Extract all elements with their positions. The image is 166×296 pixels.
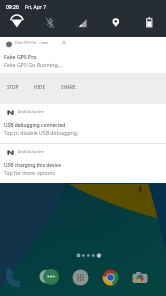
staticText: 09:26 [6,4,19,11]
staticText: Fake GPS Go Running... [4,61,62,68]
button[interactable]: Android System [0,144,166,183]
staticText: Fri, Apr 7 [25,4,47,11]
staticText: Android System [18,109,44,114]
staticText: USB debugging connected [4,122,66,129]
button[interactable]: Fake GPS Pro • now [0,37,166,73]
button[interactable]: STOP [5,81,21,93]
staticText: Fake GPS Pro [4,53,37,60]
staticText: Fake GPS Pro • now [15,40,48,45]
staticText: Tap for more options [4,169,56,176]
button[interactable]: HIDE [32,81,47,93]
staticText: Tap to disable USB debugging. [4,129,79,136]
button[interactable]: All apps [72,269,89,286]
staticText: USB charging this device [4,162,61,169]
button[interactable]: Android System [0,104,166,143]
staticText: SHARE [61,84,76,90]
staticText: HIDE [34,84,45,90]
staticText: Android System [18,149,44,154]
button[interactable]: Camera [132,270,148,286]
staticText: STOP [7,84,19,90]
button[interactable]: Messages [40,267,59,286]
button[interactable]: SHARE [59,81,78,93]
button[interactable]: Chrome [102,269,119,286]
button[interactable]: Phone [7,265,28,286]
